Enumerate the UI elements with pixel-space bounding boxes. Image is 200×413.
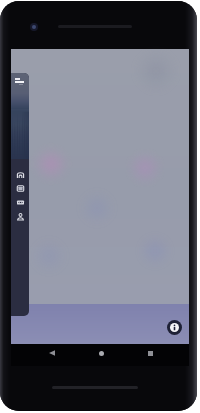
button[interactable]: Info [167, 320, 182, 335]
button[interactable]: My cards [11, 181, 29, 195]
button[interactable]: Payments [11, 195, 29, 209]
button[interactable]: Recent apps [140, 343, 160, 363]
button[interactable]: Home [91, 343, 111, 363]
button[interactable]: Home [11, 167, 29, 181]
button[interactable]: Back [42, 343, 62, 363]
button[interactable]: Profile [11, 209, 29, 223]
